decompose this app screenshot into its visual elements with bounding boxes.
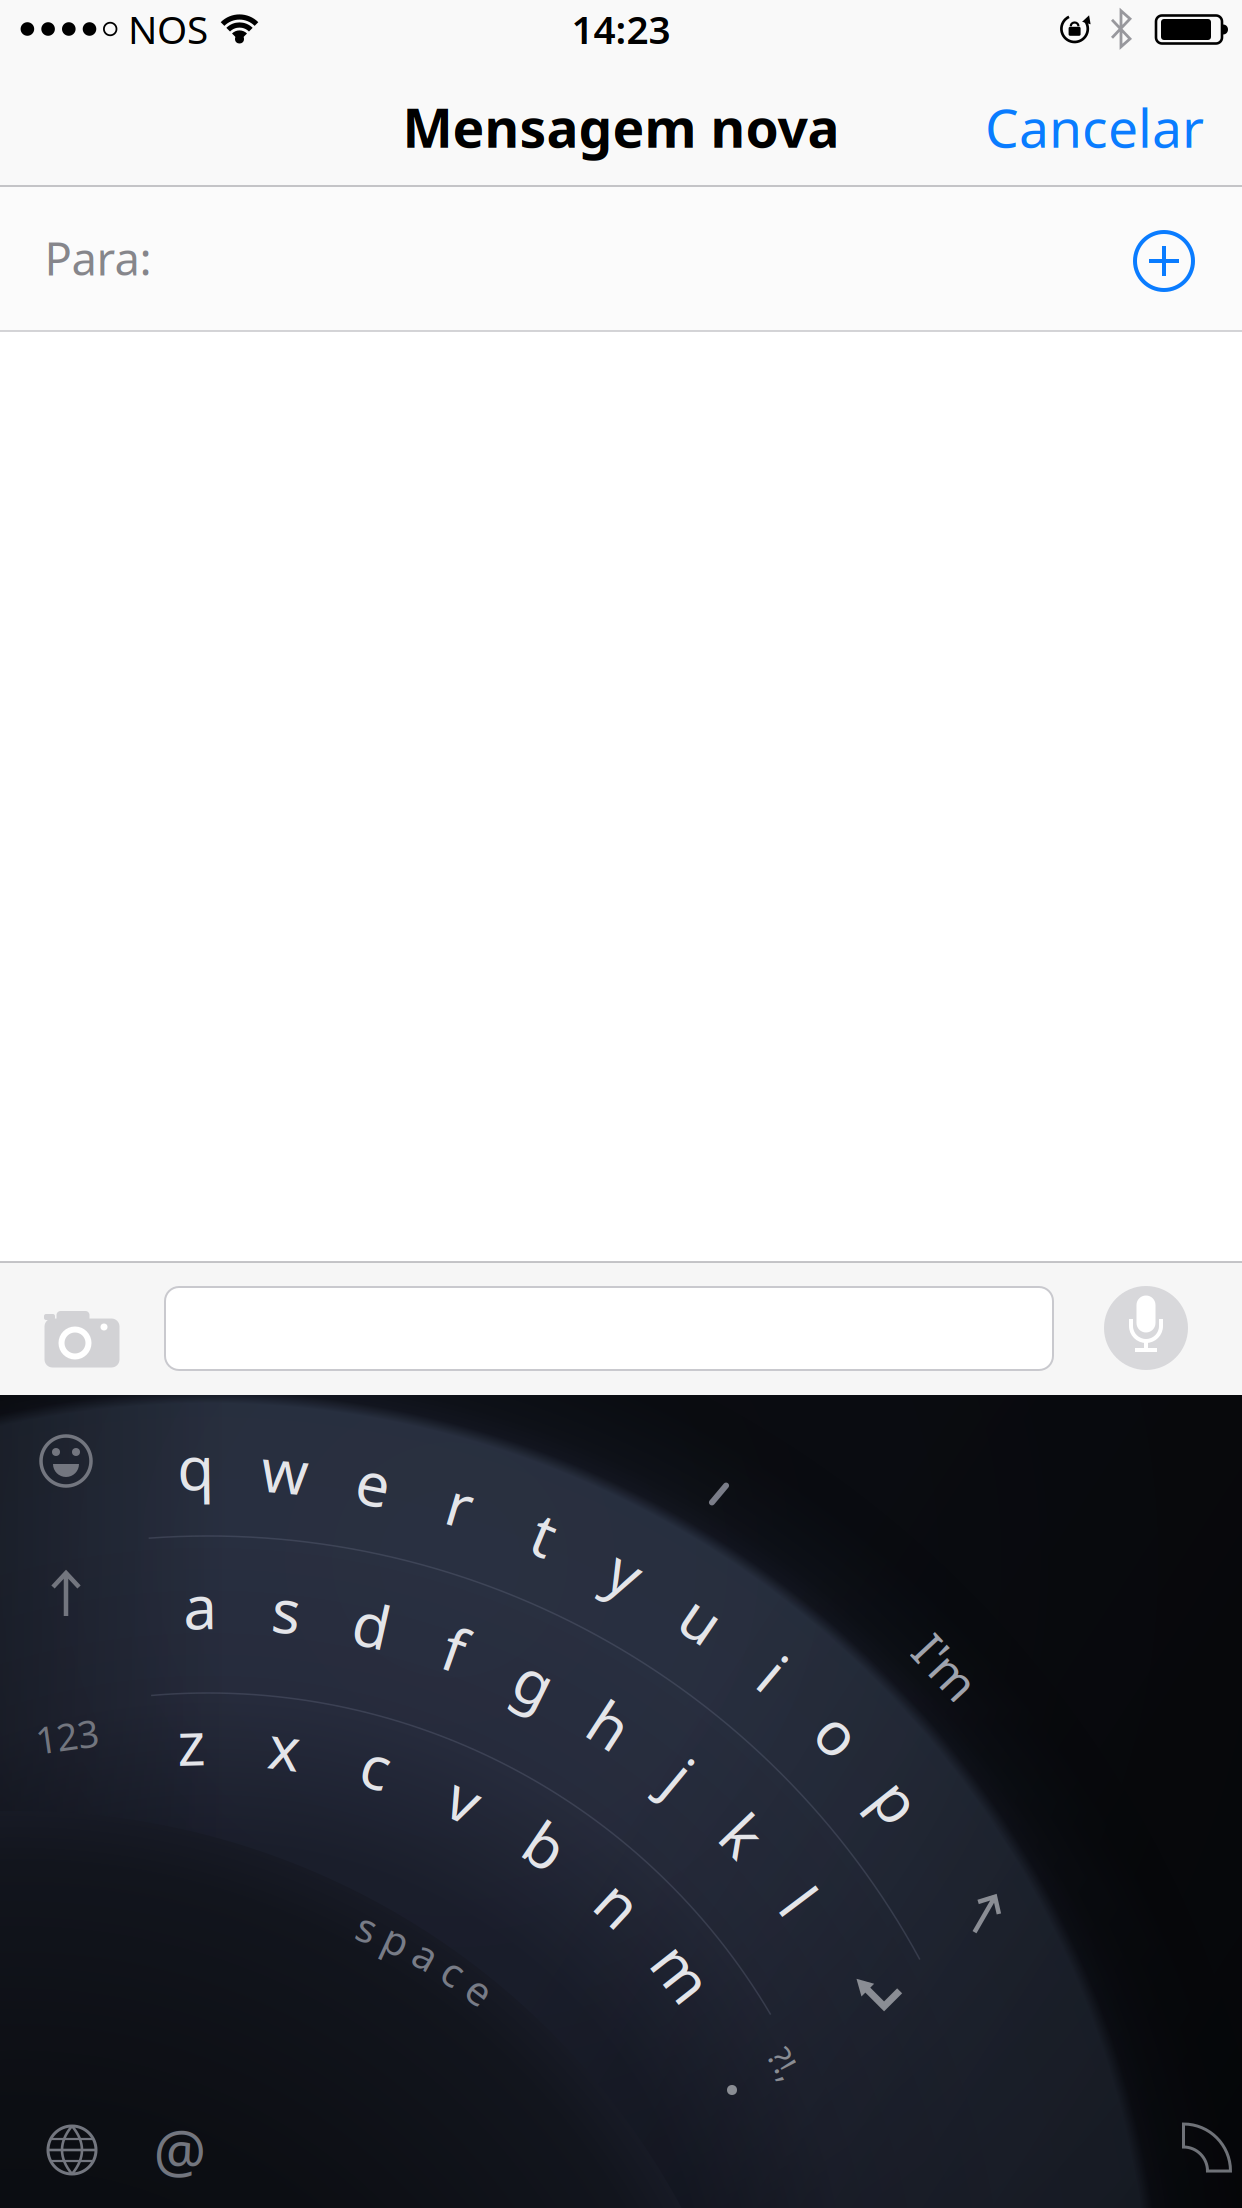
staticText: y	[610, 1533, 641, 1612]
button[interactable]: 123	[35, 1711, 98, 1761]
staticText: k	[727, 1795, 759, 1875]
staticText: d	[353, 1585, 390, 1664]
staticText: Cancelar	[985, 92, 1204, 162]
button[interactable]: h	[591, 1685, 628, 1764]
button[interactable]: Adicionar contacto	[1133, 230, 1195, 292]
staticText: @	[153, 2111, 206, 2189]
button[interactable]: Fechar teclado em arco	[1179, 2119, 1235, 2175]
button[interactable]: i	[766, 1633, 781, 1713]
staticText: e	[357, 1443, 391, 1523]
button[interactable]: q	[177, 1427, 214, 1507]
staticText: t	[534, 1494, 556, 1574]
button[interactable]: Câmara	[37, 1295, 127, 1365]
staticText: c	[444, 1945, 463, 1998]
staticText: c	[362, 1726, 391, 1806]
button[interactable]: Cancelar	[804, 82, 1204, 172]
button[interactable]: y	[610, 1533, 641, 1612]
staticText: 14:23	[571, 3, 670, 55]
staticText: Mensagem nova	[402, 92, 839, 162]
button[interactable]: a	[183, 1566, 217, 1646]
staticText: n	[601, 1864, 638, 1943]
button[interactable]: g	[516, 1642, 553, 1722]
staticText: x	[269, 1707, 301, 1787]
button[interactable]: a	[415, 1928, 437, 1981]
button[interactable]: e	[469, 1963, 492, 2017]
staticText: s	[358, 1901, 377, 1954]
button[interactable]: I'm	[911, 1635, 981, 1699]
button[interactable]: s	[358, 1901, 377, 1954]
staticText: o	[821, 1694, 857, 1773]
button[interactable]: Return	[849, 1960, 905, 2016]
button[interactable]: o	[821, 1694, 857, 1773]
button[interactable]: z	[177, 1702, 205, 1782]
staticText: j	[672, 1736, 687, 1816]
staticText: NOS	[128, 3, 208, 55]
staticText: e	[469, 1963, 492, 2017]
button[interactable]: Mensagem	[165, 1287, 1053, 1370]
button[interactable]: Teclado seguinte	[46, 2124, 98, 2176]
button[interactable]: Shift	[49, 1568, 83, 1618]
button[interactable]: r	[448, 1464, 473, 1544]
staticText: b	[527, 1805, 564, 1885]
staticText: f	[444, 1609, 465, 1688]
button[interactable]: ?!,	[769, 2043, 801, 2085]
button[interactable]: c	[362, 1726, 391, 1806]
staticText: u	[683, 1579, 720, 1659]
button[interactable]: Ditar	[1104, 1286, 1188, 1370]
staticText: 123	[35, 1711, 98, 1761]
button[interactable]: Emoji	[38, 1433, 94, 1489]
staticText: r	[448, 1464, 473, 1544]
staticText: h	[591, 1685, 628, 1764]
staticText: p	[879, 1761, 916, 1841]
staticText: I'm	[911, 1635, 981, 1699]
button[interactable]: t	[534, 1494, 556, 1574]
button[interactable]: p	[384, 1913, 409, 1966]
button[interactable]: s	[272, 1570, 301, 1650]
button[interactable]: u	[683, 1579, 720, 1659]
button[interactable]: f	[444, 1609, 465, 1688]
button[interactable]: j	[672, 1736, 687, 1816]
button[interactable]: Ponto	[727, 2085, 737, 2095]
staticText: g	[516, 1642, 553, 1722]
staticText: m	[655, 1933, 711, 2012]
button[interactable]: x	[269, 1707, 301, 1787]
staticText: q	[177, 1427, 214, 1507]
staticText: z	[177, 1702, 205, 1782]
staticText: a	[415, 1928, 437, 1981]
button[interactable]: l	[791, 1861, 806, 1940]
button[interactable]: b	[527, 1805, 564, 1885]
staticText: v	[449, 1759, 479, 1839]
button[interactable]: k	[727, 1795, 759, 1875]
staticText: s	[272, 1570, 301, 1650]
staticText: Para:	[44, 228, 151, 288]
staticText: p	[384, 1913, 409, 1966]
button[interactable]: p	[879, 1761, 916, 1841]
staticText: i	[766, 1633, 781, 1713]
button[interactable]: d	[353, 1585, 390, 1664]
staticText: w	[262, 1430, 309, 1510]
staticText: ?!,	[769, 2043, 801, 2085]
button[interactable]: c	[444, 1945, 463, 1998]
button[interactable]: @	[153, 2111, 206, 2189]
button[interactable]: Shift	[969, 1891, 1001, 1937]
button[interactable]: Apóstrofo	[716, 1480, 722, 1508]
staticText: a	[183, 1566, 217, 1646]
button[interactable]: m	[655, 1933, 711, 2012]
button[interactable]: v	[449, 1759, 479, 1839]
button[interactable]: n	[601, 1864, 638, 1943]
button[interactable]: w	[262, 1430, 309, 1510]
staticText: l	[791, 1861, 806, 1940]
button[interactable]: e	[357, 1443, 391, 1523]
